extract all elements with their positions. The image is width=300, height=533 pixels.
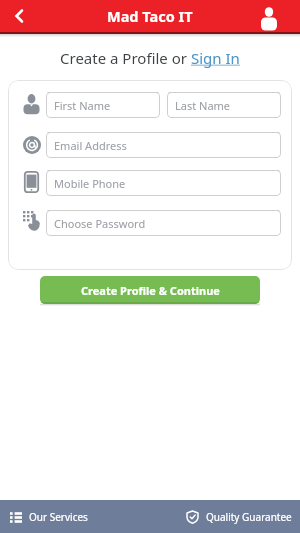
button[interactable]: First Name (46, 92, 160, 118)
staticText: Create a Profile or (60, 48, 191, 68)
button[interactable]: Quality Guarantee (186, 510, 292, 524)
staticText: Choose Password (54, 216, 146, 231)
button[interactable]: Create Profile & Continue (40, 276, 260, 304)
button[interactable]: Mobile Phone (46, 170, 281, 196)
button[interactable]: Email Address (46, 132, 281, 158)
staticText: Quality Guarantee (206, 510, 292, 524)
button[interactable]: Our Services (10, 510, 88, 524)
staticText: Create Profile & Continue (81, 283, 220, 298)
button[interactable] (6, 2, 34, 30)
button[interactable]: Last Name (167, 92, 281, 118)
button[interactable]: Sign In (191, 48, 240, 68)
button[interactable] (256, 3, 282, 29)
staticText: Mobile Phone (54, 176, 126, 191)
button[interactable]: Choose Password (46, 210, 281, 236)
staticText: First Name (54, 98, 111, 113)
staticText: Our Services (29, 510, 88, 524)
staticText: Email Address (54, 138, 127, 153)
staticText: Mad Taco IT (107, 6, 193, 26)
staticText: Last Name (175, 98, 231, 113)
